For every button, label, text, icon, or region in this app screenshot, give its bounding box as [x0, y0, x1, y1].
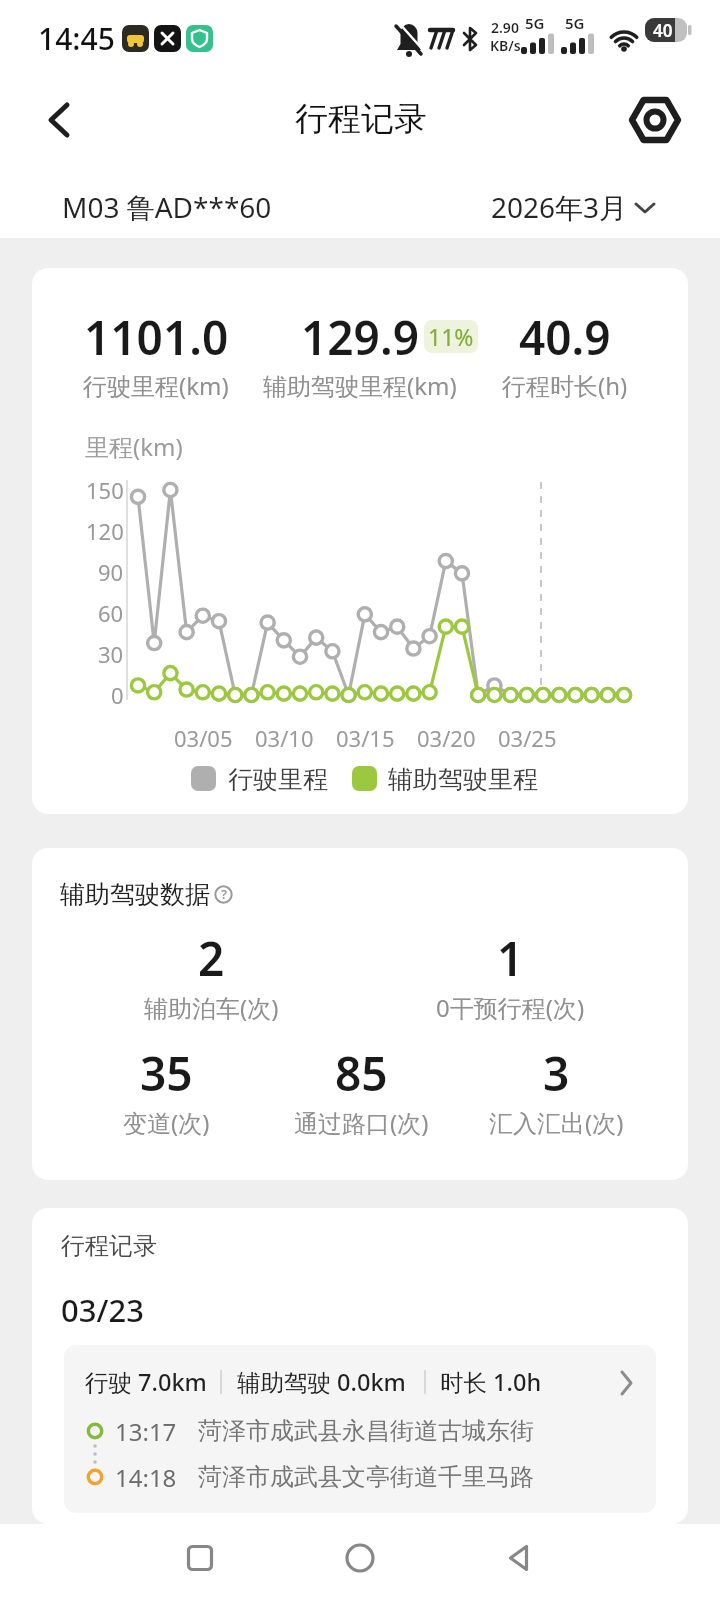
- staticText: 13:17: [115, 1415, 177, 1448]
- staticText: 40.9: [519, 306, 611, 369]
- staticText: 03/25: [498, 723, 557, 753]
- button[interactable]: [490, 1528, 550, 1588]
- staticText: 150: [86, 475, 124, 505]
- staticText: 90: [98, 557, 124, 587]
- staticText: 1101.0: [84, 306, 229, 369]
- staticText: 行程时长(h): [502, 369, 628, 402]
- staticText: 40: [653, 19, 673, 42]
- staticText: 120: [86, 516, 124, 546]
- staticText: 60: [98, 598, 124, 628]
- staticText: 03/10: [255, 723, 314, 753]
- staticText: 03/15: [336, 723, 395, 753]
- staticText: 11%: [428, 321, 474, 352]
- staticText: 变道(次): [123, 1106, 210, 1139]
- staticText: 85: [335, 1042, 388, 1105]
- staticText: 2: [198, 927, 225, 990]
- staticText: 菏泽市成武县文亭街道千里马路: [198, 1462, 534, 1492]
- button[interactable]: [64, 1345, 656, 1513]
- staticText: 菏泽市成武县永昌街道古城东街: [198, 1416, 534, 1446]
- staticText: 5G: [525, 13, 545, 33]
- staticText: 通过路口(次): [294, 1106, 429, 1139]
- staticText: 0: [111, 680, 124, 710]
- staticText: M03 鲁AD***60: [62, 188, 272, 226]
- staticText: 汇入汇出(次): [489, 1106, 624, 1139]
- staticText: 03/20: [417, 723, 476, 753]
- staticText: 里程(km): [85, 430, 183, 463]
- staticText: 2026年3月: [491, 188, 628, 226]
- staticText: 14:18: [115, 1461, 177, 1494]
- staticText: 辅助驾驶 0.0km: [237, 1366, 406, 1398]
- staticText: 03/23: [61, 1289, 144, 1331]
- staticText: 1: [497, 927, 524, 990]
- staticText: 行驶 7.0km: [85, 1366, 207, 1398]
- staticText: 2.90: [491, 18, 519, 37]
- staticText: ?: [221, 885, 227, 903]
- button[interactable]: [30, 90, 90, 150]
- staticText: 行驶里程: [228, 764, 328, 795]
- staticText: 行驶里程(km): [83, 369, 229, 402]
- staticText: 14:45: [38, 18, 115, 59]
- staticText: 5G: [565, 13, 585, 33]
- staticText: 30: [98, 639, 124, 669]
- staticText: 辅助驾驶里程(km): [263, 369, 457, 402]
- staticText: 129.9: [301, 306, 419, 369]
- button[interactable]: 2026年3月: [428, 177, 628, 237]
- staticText: 行程记录: [61, 1231, 157, 1261]
- staticText: 辅助驾驶里程: [388, 764, 538, 795]
- staticText: 0干预行程(次): [436, 991, 585, 1024]
- staticText: 行程记录: [295, 98, 427, 140]
- button[interactable]: [170, 1528, 230, 1588]
- button[interactable]: [625, 90, 685, 150]
- staticText: 辅助驾驶数据: [60, 879, 210, 910]
- staticText: KB/s: [490, 36, 521, 55]
- staticText: 03/05: [174, 723, 233, 753]
- staticText: 35: [140, 1042, 193, 1105]
- button[interactable]: [330, 1528, 390, 1588]
- staticText: 时长 1.0h: [440, 1366, 542, 1398]
- staticText: 3: [543, 1042, 570, 1105]
- staticText: 辅助泊车(次): [144, 991, 279, 1024]
